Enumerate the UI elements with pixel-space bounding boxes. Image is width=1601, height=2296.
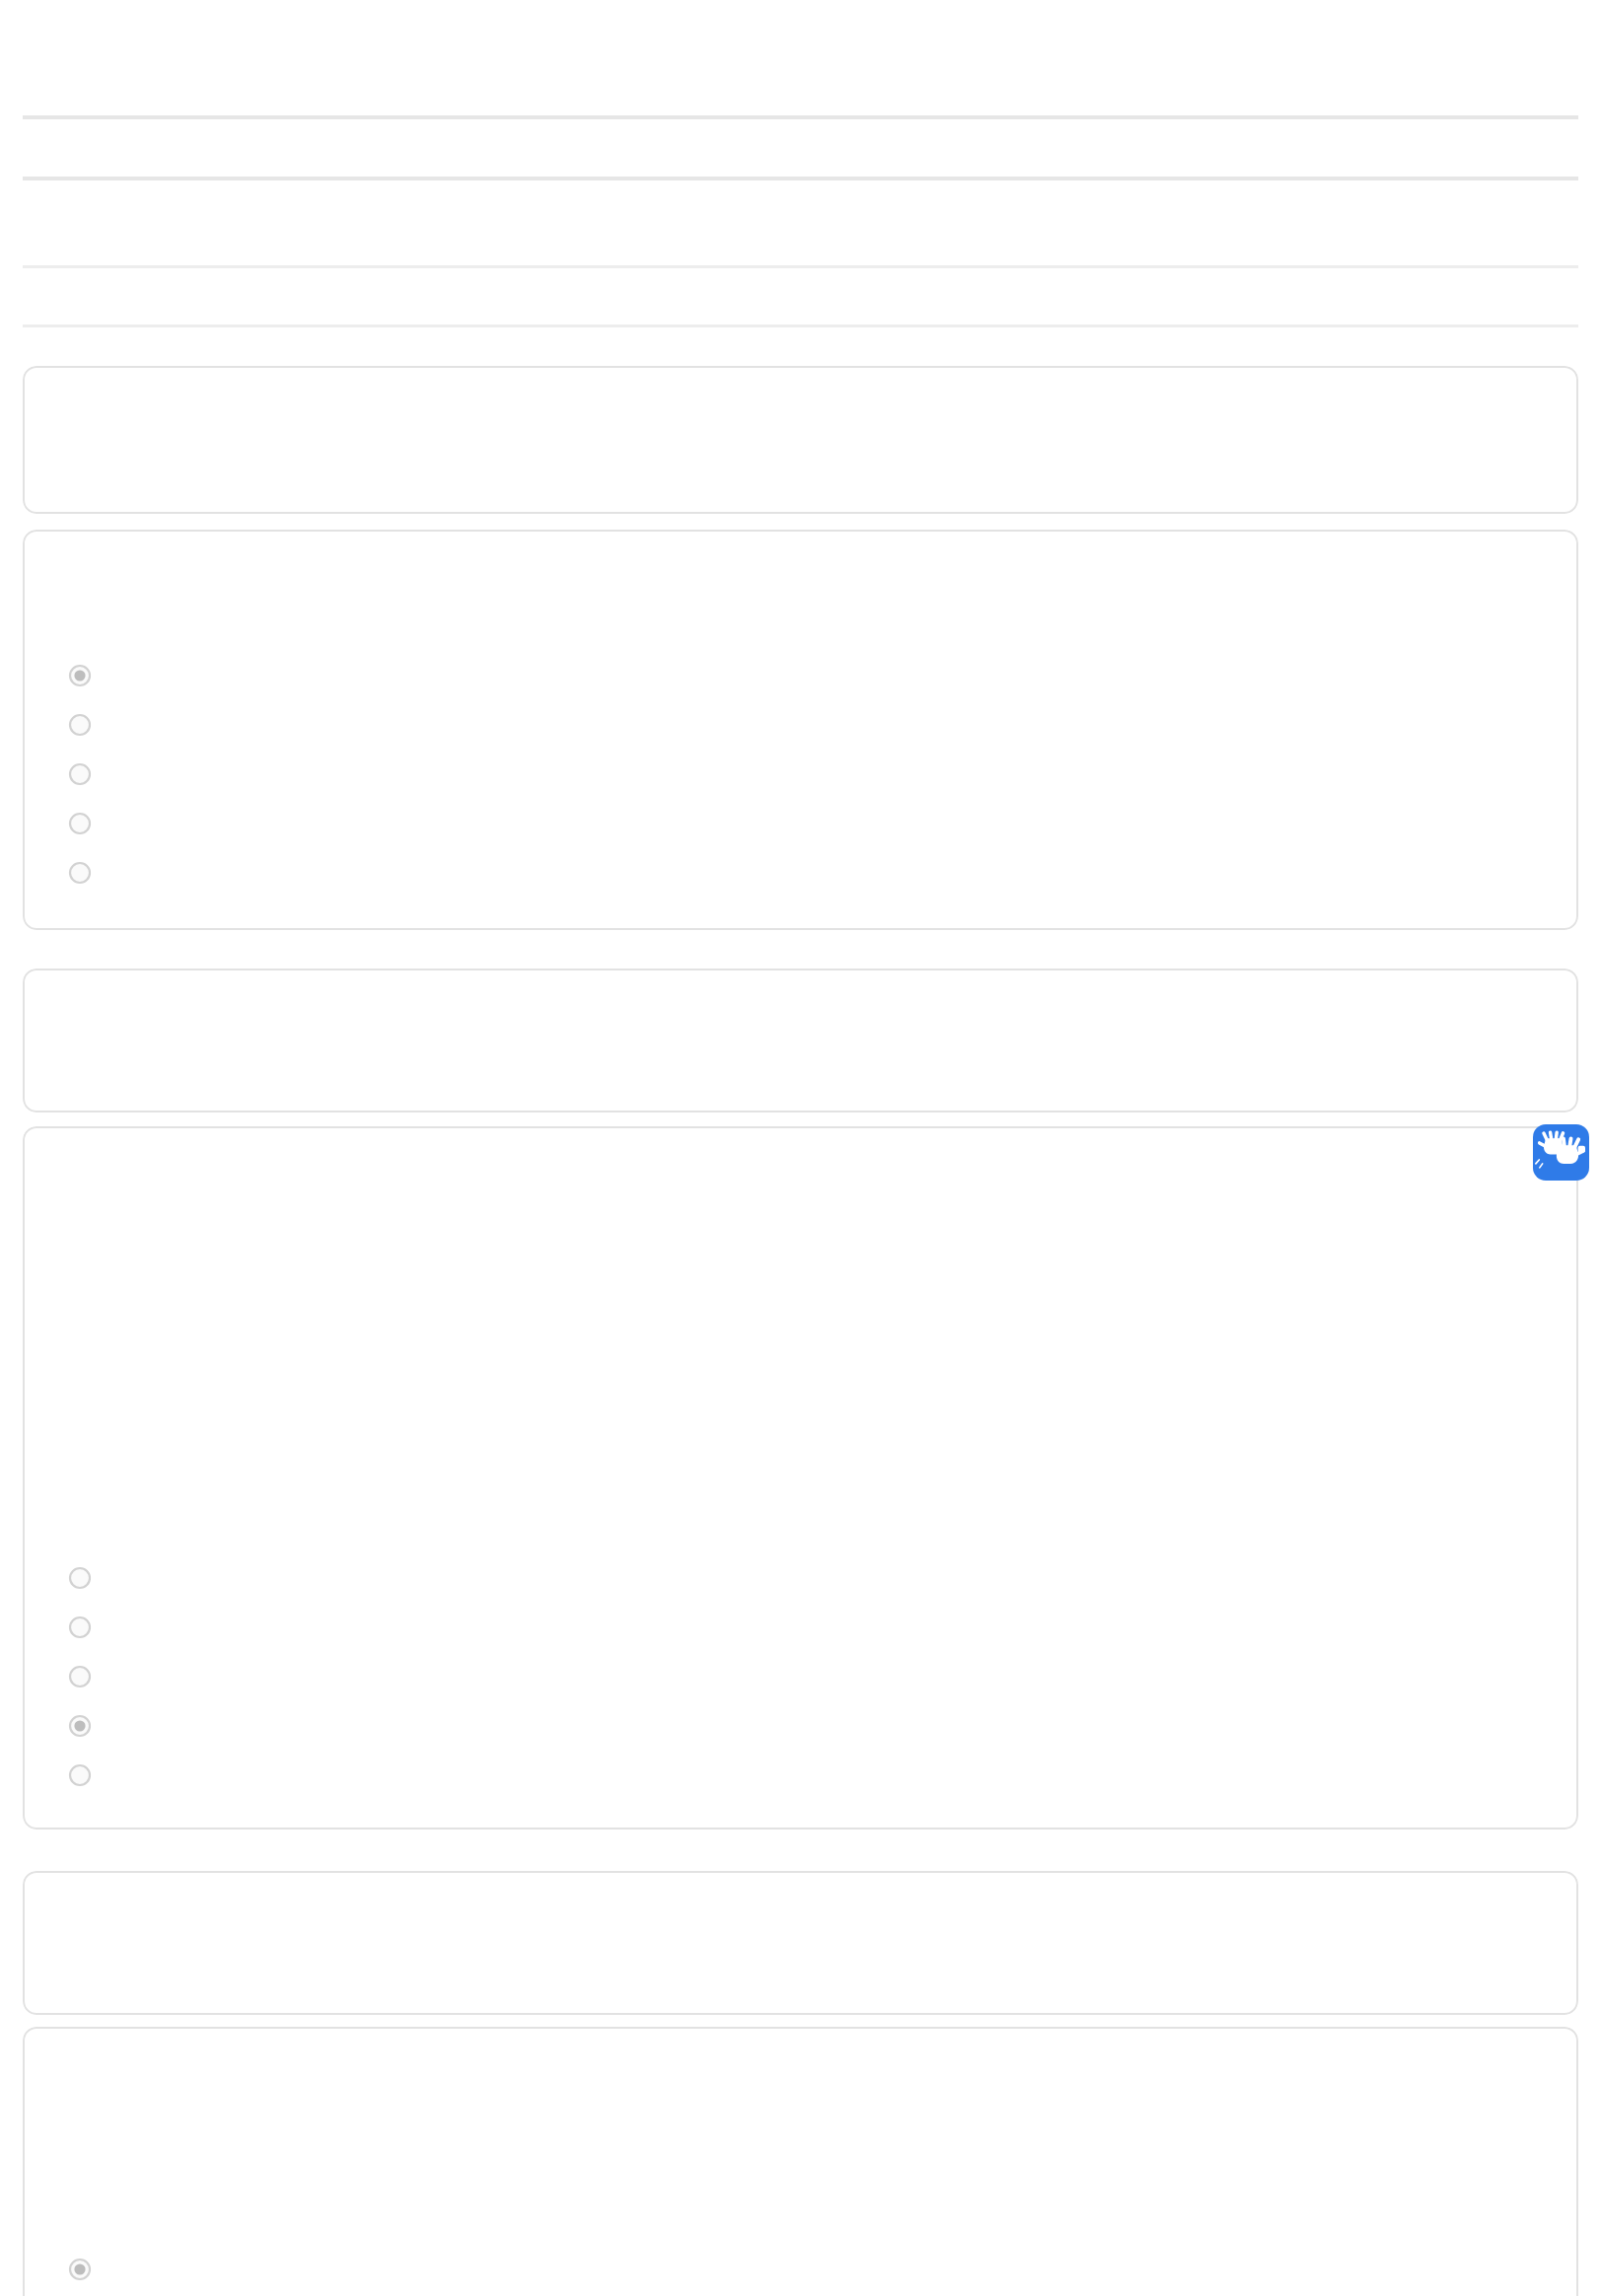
button[interactable]	[23, 530, 1578, 930]
button[interactable]: Option 3	[58, 753, 102, 796]
button[interactable]: Option 1	[58, 654, 102, 697]
button[interactable]: Option 5	[58, 851, 102, 895]
button[interactable]: Option 3	[58, 1655, 102, 1698]
button[interactable]: Option 5	[58, 1754, 102, 1797]
button[interactable]	[23, 1871, 1578, 2015]
button[interactable]: Option 4	[58, 802, 102, 845]
button[interactable]: Option 1	[58, 2248, 102, 2291]
button[interactable]	[23, 1126, 1578, 1830]
button[interactable]	[23, 2027, 1578, 2296]
button[interactable]: Option 1	[58, 1556, 102, 1600]
button[interactable]: Option 2	[58, 703, 102, 747]
button[interactable]	[23, 969, 1578, 1112]
button[interactable]	[23, 366, 1578, 514]
button[interactable]: Option 2	[58, 1606, 102, 1649]
button[interactable]: Sign language accessibility	[1533, 1124, 1589, 1181]
button[interactable]: Option 4	[58, 1704, 102, 1748]
